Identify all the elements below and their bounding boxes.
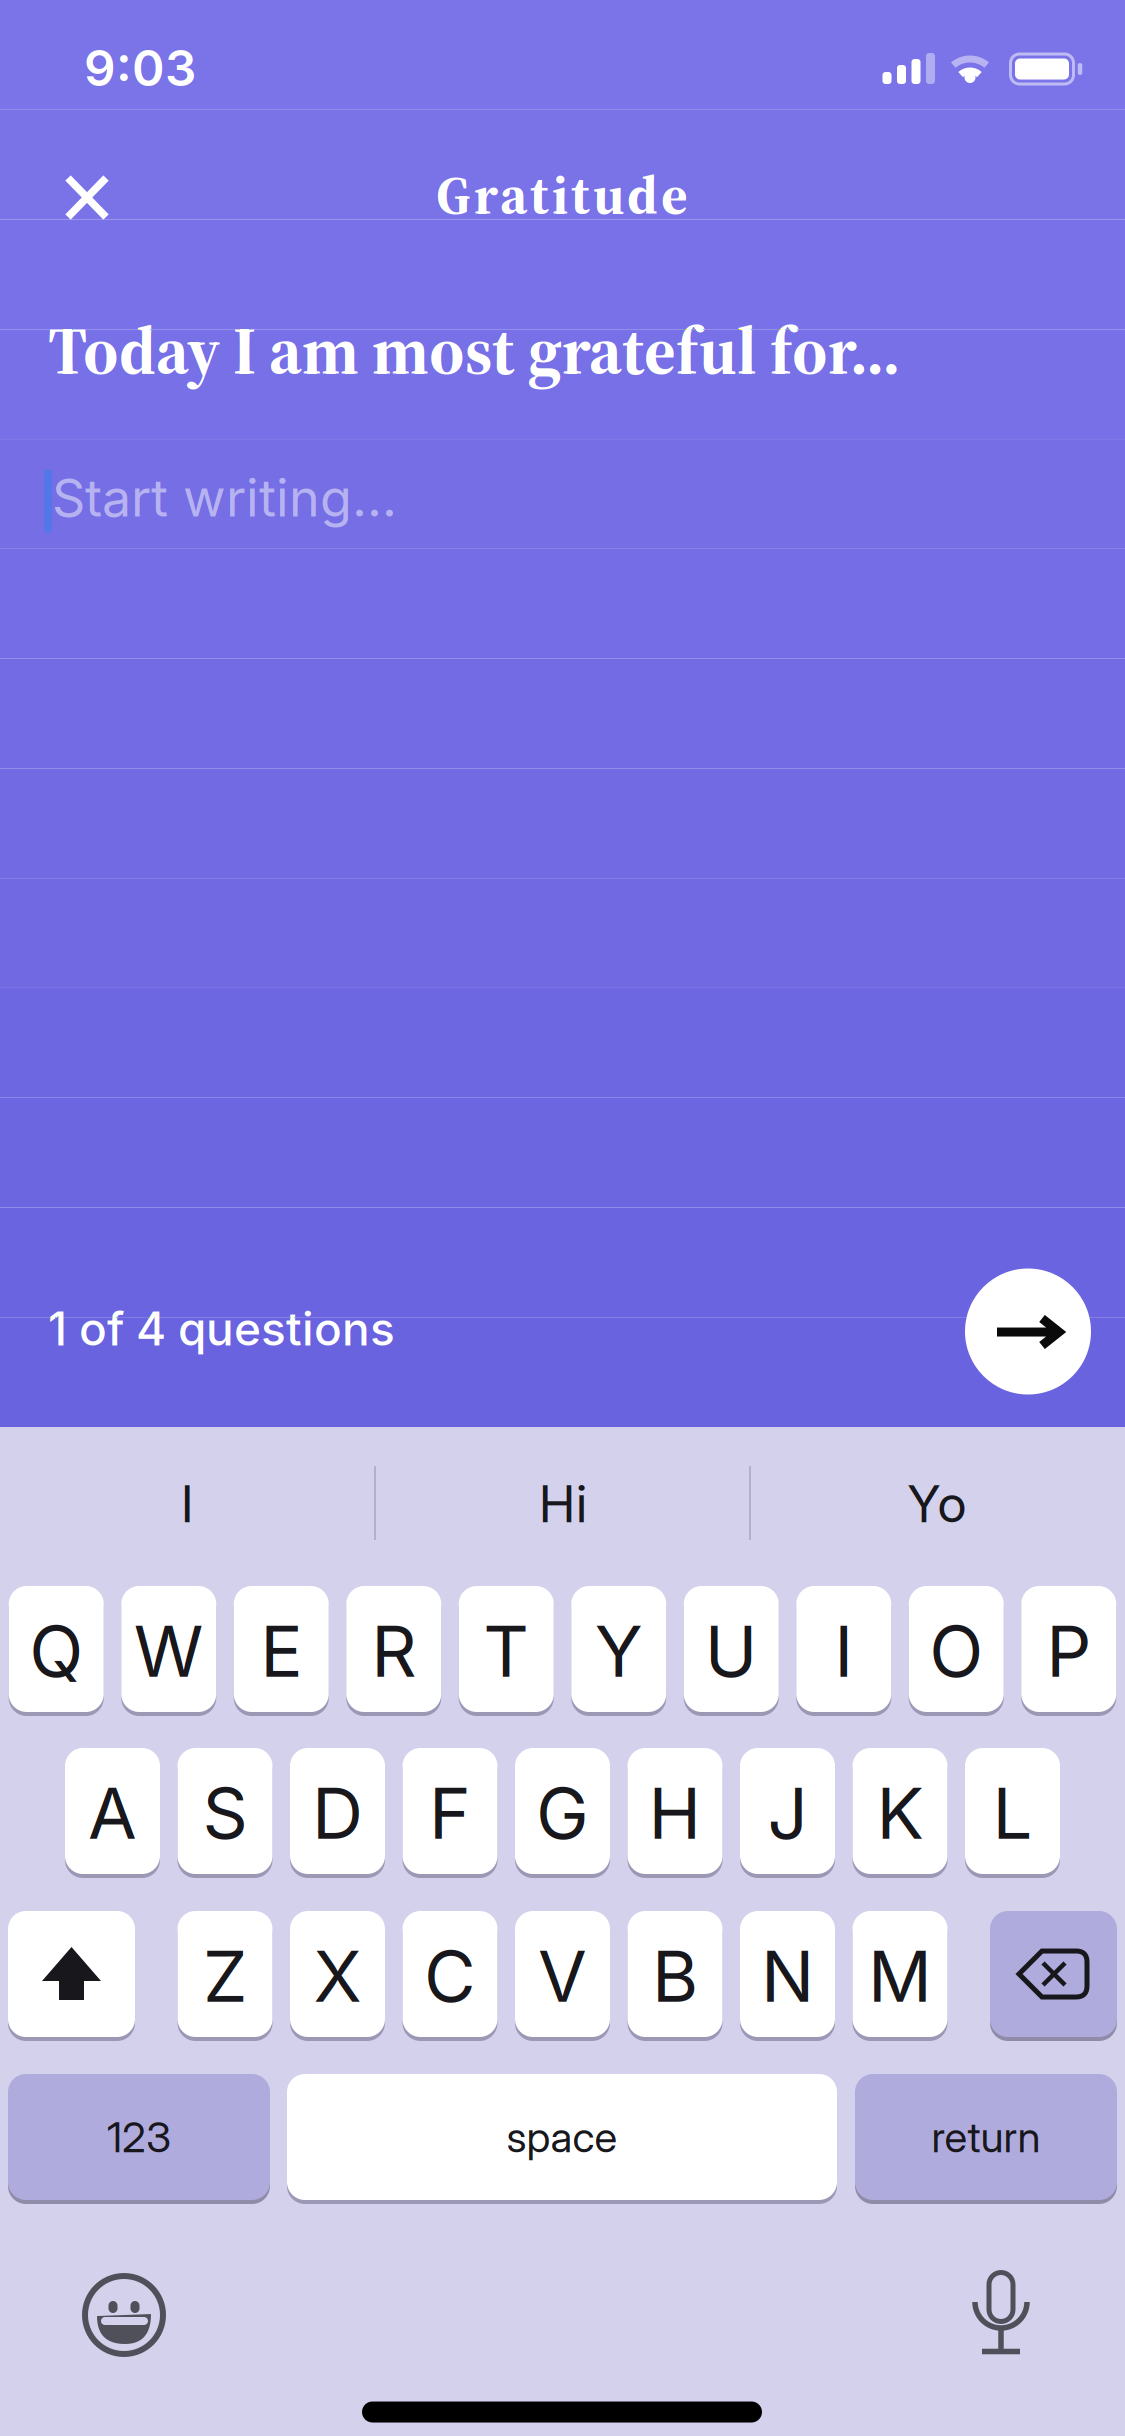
button[interactable] [970, 2269, 1032, 2355]
button[interactable]: space [287, 2074, 837, 2200]
staticText: Start writing… [52, 466, 397, 529]
staticText: Z [203, 1933, 247, 2019]
button[interactable]: Hi [393, 1449, 733, 1559]
staticText: P [1046, 1608, 1091, 1694]
staticText: S [202, 1770, 247, 1856]
staticText: E [260, 1608, 302, 1694]
button[interactable]: return [855, 2074, 1117, 2200]
button[interactable]: K [852, 1748, 947, 1874]
staticText: return [931, 2112, 1040, 2162]
staticText: Gratitude [436, 157, 688, 231]
button[interactable]: A [65, 1748, 160, 1874]
button[interactable]: S [177, 1748, 272, 1874]
button[interactable]: P [1021, 1586, 1116, 1712]
staticText: F [429, 1770, 471, 1856]
button[interactable] [82, 2273, 166, 2357]
button[interactable]: N [740, 1911, 835, 2037]
button[interactable]: U [684, 1586, 779, 1712]
staticText: B [652, 1933, 698, 2019]
staticText: space [506, 2112, 617, 2162]
staticText: D [312, 1770, 363, 1856]
staticText: X [313, 1933, 361, 2019]
staticText: K [876, 1770, 923, 1856]
button[interactable]: C [402, 1911, 497, 2037]
button[interactable] [965, 1268, 1091, 1394]
staticText: H [648, 1770, 701, 1856]
staticText: A [88, 1770, 137, 1856]
button[interactable]: X [290, 1911, 385, 2037]
staticText: I [180, 1474, 193, 1534]
button[interactable]: I [796, 1586, 891, 1712]
button[interactable]: G [515, 1748, 610, 1874]
staticText: V [538, 1933, 587, 2019]
button[interactable]: W [121, 1586, 216, 1712]
button[interactable] [59, 169, 115, 226]
button[interactable]: T [459, 1586, 554, 1712]
staticText: C [424, 1933, 476, 2019]
staticText: Hi [538, 1474, 587, 1534]
staticText: T [483, 1608, 529, 1694]
button[interactable]: Y [571, 1586, 666, 1712]
button[interactable]: Yo [767, 1449, 1107, 1559]
staticText: 1 of 4 questions [48, 1301, 395, 1357]
button[interactable] [990, 1911, 1117, 2037]
staticText: Yo [907, 1474, 967, 1534]
button[interactable]: I [17, 1449, 357, 1559]
button[interactable]: B [627, 1911, 722, 2037]
button[interactable]: F [402, 1748, 497, 1874]
button[interactable]: Q [9, 1586, 104, 1712]
button[interactable]: R [346, 1586, 441, 1712]
button[interactable]: D [290, 1748, 385, 1874]
button[interactable]: V [515, 1911, 610, 2037]
staticText: Q [29, 1608, 83, 1694]
staticText: L [992, 1770, 1032, 1856]
button[interactable]: Z [177, 1911, 272, 2037]
button[interactable] [8, 1911, 135, 2037]
staticText: I [834, 1608, 853, 1694]
staticText: G [536, 1770, 589, 1856]
button[interactable]: M [852, 1911, 947, 2037]
button[interactable]: 123 [8, 2074, 270, 2200]
staticText: 9:03 [84, 38, 196, 98]
staticText: W [134, 1608, 204, 1694]
staticText: U [705, 1608, 758, 1694]
staticText: Y [595, 1608, 643, 1694]
staticText: O [929, 1608, 983, 1694]
staticText: M [868, 1933, 932, 2019]
staticText: N [761, 1933, 814, 2019]
button[interactable]: H [627, 1748, 722, 1874]
button[interactable]: O [909, 1586, 1004, 1712]
staticText: 123 [107, 2112, 171, 2162]
button[interactable]: E [234, 1586, 329, 1712]
staticText: J [767, 1770, 807, 1856]
button[interactable]: L [965, 1748, 1060, 1874]
staticText: Today I am most grateful for… [48, 305, 900, 395]
button[interactable]: J [740, 1748, 835, 1874]
staticText: R [371, 1608, 416, 1694]
